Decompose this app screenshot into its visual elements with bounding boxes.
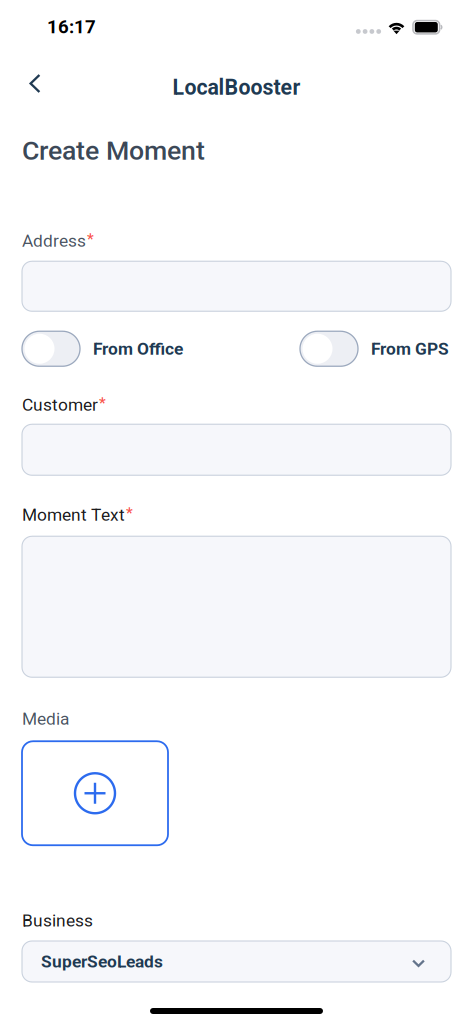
staticText: From GPS [371, 339, 449, 359]
button[interactable]: Back [13, 61, 57, 105]
staticText: Media [22, 709, 69, 729]
staticText: Address [22, 231, 86, 251]
staticText: Moment Text [22, 505, 125, 525]
staticText: * [126, 505, 133, 522]
button[interactable]: SuperSeoLeads [22, 941, 451, 982]
staticText: From Office [93, 339, 183, 359]
staticText: * [99, 395, 106, 412]
staticText: Business [22, 910, 93, 931]
button[interactable]: From GPS [300, 331, 449, 366]
staticText: Create Moment [22, 135, 205, 166]
staticText: Customer [22, 395, 98, 415]
staticText: * [87, 231, 94, 248]
button[interactable]: Add media [22, 741, 168, 845]
staticText: SuperSeoLeads [41, 951, 163, 972]
staticText: 16:17 [47, 16, 96, 38]
button[interactable]: From Office [22, 331, 183, 366]
staticText: LocalBooster [172, 75, 300, 100]
